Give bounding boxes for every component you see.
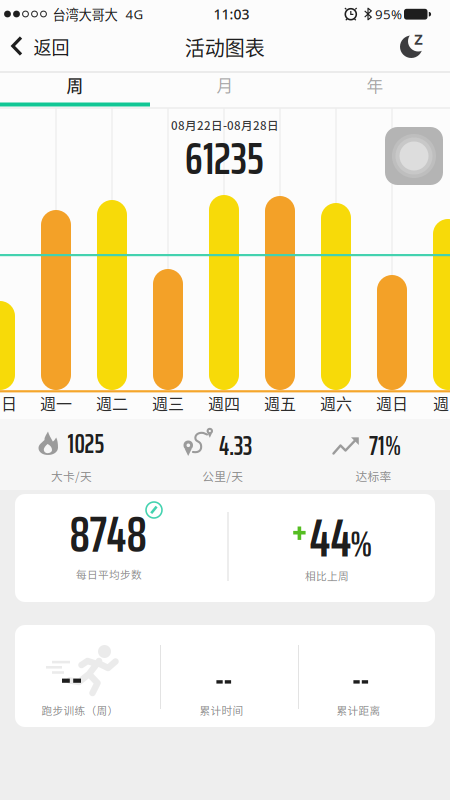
staticText: 週 bbox=[433, 391, 449, 415]
staticText: 8748 bbox=[69, 494, 146, 574]
staticText: Z bbox=[414, 29, 422, 49]
staticText: 44 bbox=[309, 496, 351, 580]
staticText: 週三 bbox=[152, 391, 184, 415]
staticText: 累计时间 bbox=[200, 702, 244, 718]
staticText: 11:03 bbox=[213, 4, 249, 24]
staticText: 相比上周 bbox=[305, 568, 349, 583]
staticText: % bbox=[350, 516, 372, 572]
staticText: 周 bbox=[66, 73, 83, 97]
staticText: 跑步训练（周） bbox=[41, 702, 118, 718]
staticText: 週四 bbox=[208, 391, 240, 415]
staticText: 返回 bbox=[33, 33, 69, 60]
staticText: 週二 bbox=[96, 391, 128, 415]
staticText: 每日平均步数 bbox=[76, 566, 142, 582]
staticText: 61235 bbox=[185, 123, 264, 194]
staticText: 71% bbox=[369, 425, 401, 466]
staticText: 08月22日-08月28日 bbox=[171, 117, 279, 133]
staticText: 月 bbox=[216, 73, 233, 97]
staticText: 台湾大哥大 bbox=[52, 4, 117, 24]
staticText: 日 bbox=[1, 391, 17, 415]
staticText: 95% bbox=[375, 5, 402, 23]
staticText: 週六 bbox=[320, 391, 352, 415]
staticText: 活动图表 bbox=[185, 32, 265, 61]
staticText: 年 bbox=[366, 73, 383, 97]
staticText: 4.33 bbox=[219, 425, 252, 466]
staticText: 4G bbox=[125, 5, 143, 23]
staticText: 公里/天 bbox=[202, 467, 243, 484]
staticText: 达标率 bbox=[355, 467, 391, 484]
staticText: 大卡/天 bbox=[51, 467, 92, 484]
staticText: 週五 bbox=[264, 391, 296, 415]
staticText: 週一 bbox=[40, 391, 72, 415]
staticText: 累计距离 bbox=[337, 702, 381, 718]
staticText: 1025 bbox=[67, 423, 104, 464]
staticText: 週日 bbox=[376, 391, 408, 415]
